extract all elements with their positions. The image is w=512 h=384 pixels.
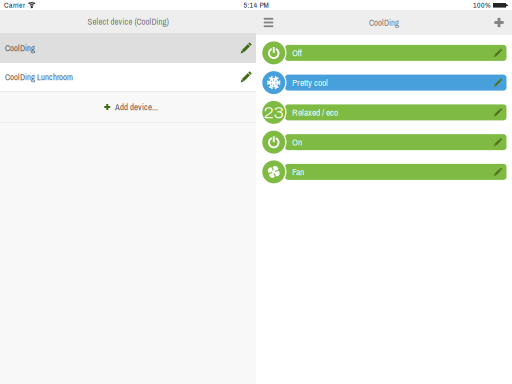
button[interactable]: Off: [256, 38, 512, 68]
button[interactable]: Menu: [256, 10, 280, 35]
button[interactable]: CoolDing: [0, 33, 256, 63]
staticText: Select device (CoolDing): [87, 16, 168, 27]
button[interactable]: Pretty cool: [256, 68, 512, 98]
staticText: CoolDing: [5, 42, 35, 54]
button[interactable]: CoolDing Lunchroom: [0, 63, 256, 91]
staticText: Fan: [292, 166, 304, 178]
staticText: Off: [292, 47, 302, 59]
staticText: 23: [264, 103, 284, 122]
button[interactable]: Add command: [487, 10, 511, 35]
staticText: CoolDing Lunchroom: [5, 71, 73, 83]
staticText: On: [292, 136, 302, 148]
staticText: Carrier: [4, 0, 25, 10]
staticText: 100%: [473, 0, 491, 10]
button[interactable]: Add device...: [0, 92, 256, 122]
staticText: Add device...: [115, 101, 158, 113]
button[interactable]: On: [256, 127, 512, 157]
staticText: Relaxed / eco: [292, 106, 338, 119]
staticText: CoolDing: [369, 17, 399, 28]
staticText: Pretty cool: [292, 76, 328, 89]
button[interactable]: Fan: [256, 157, 512, 187]
staticText: 5:14 PM: [243, 0, 268, 10]
button[interactable]: Relaxed / eco: [256, 97, 512, 127]
